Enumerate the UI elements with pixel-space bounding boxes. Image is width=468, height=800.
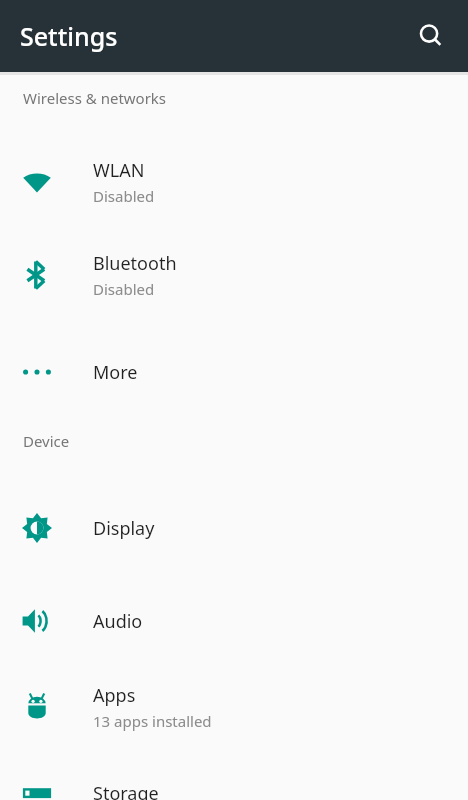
button[interactable]: Display — [0, 502, 468, 554]
staticText: Disabled — [93, 186, 155, 206]
staticText: Wireless & networks — [23, 88, 167, 108]
staticText: Disabled — [93, 279, 155, 299]
staticText: Settings — [20, 19, 118, 53]
staticText: Bluetooth — [93, 251, 177, 276]
button[interactable]: Search — [407, 12, 455, 60]
button[interactable]: Audio — [0, 595, 468, 647]
staticText: Device — [23, 431, 70, 451]
button[interactable]: Storage — [0, 767, 468, 800]
staticText: Apps — [93, 683, 136, 708]
staticText: 13 apps installed — [93, 711, 212, 731]
button[interactable]: Bluetooth — [0, 241, 468, 309]
staticText: Audio — [93, 609, 143, 634]
button[interactable]: More — [0, 346, 468, 398]
staticText: More — [93, 360, 138, 385]
staticText: Display — [93, 516, 155, 541]
button[interactable]: Apps — [0, 673, 468, 741]
button[interactable]: WLAN — [0, 148, 468, 216]
staticText: WLAN — [93, 158, 145, 183]
staticText: Storage — [93, 781, 159, 800]
